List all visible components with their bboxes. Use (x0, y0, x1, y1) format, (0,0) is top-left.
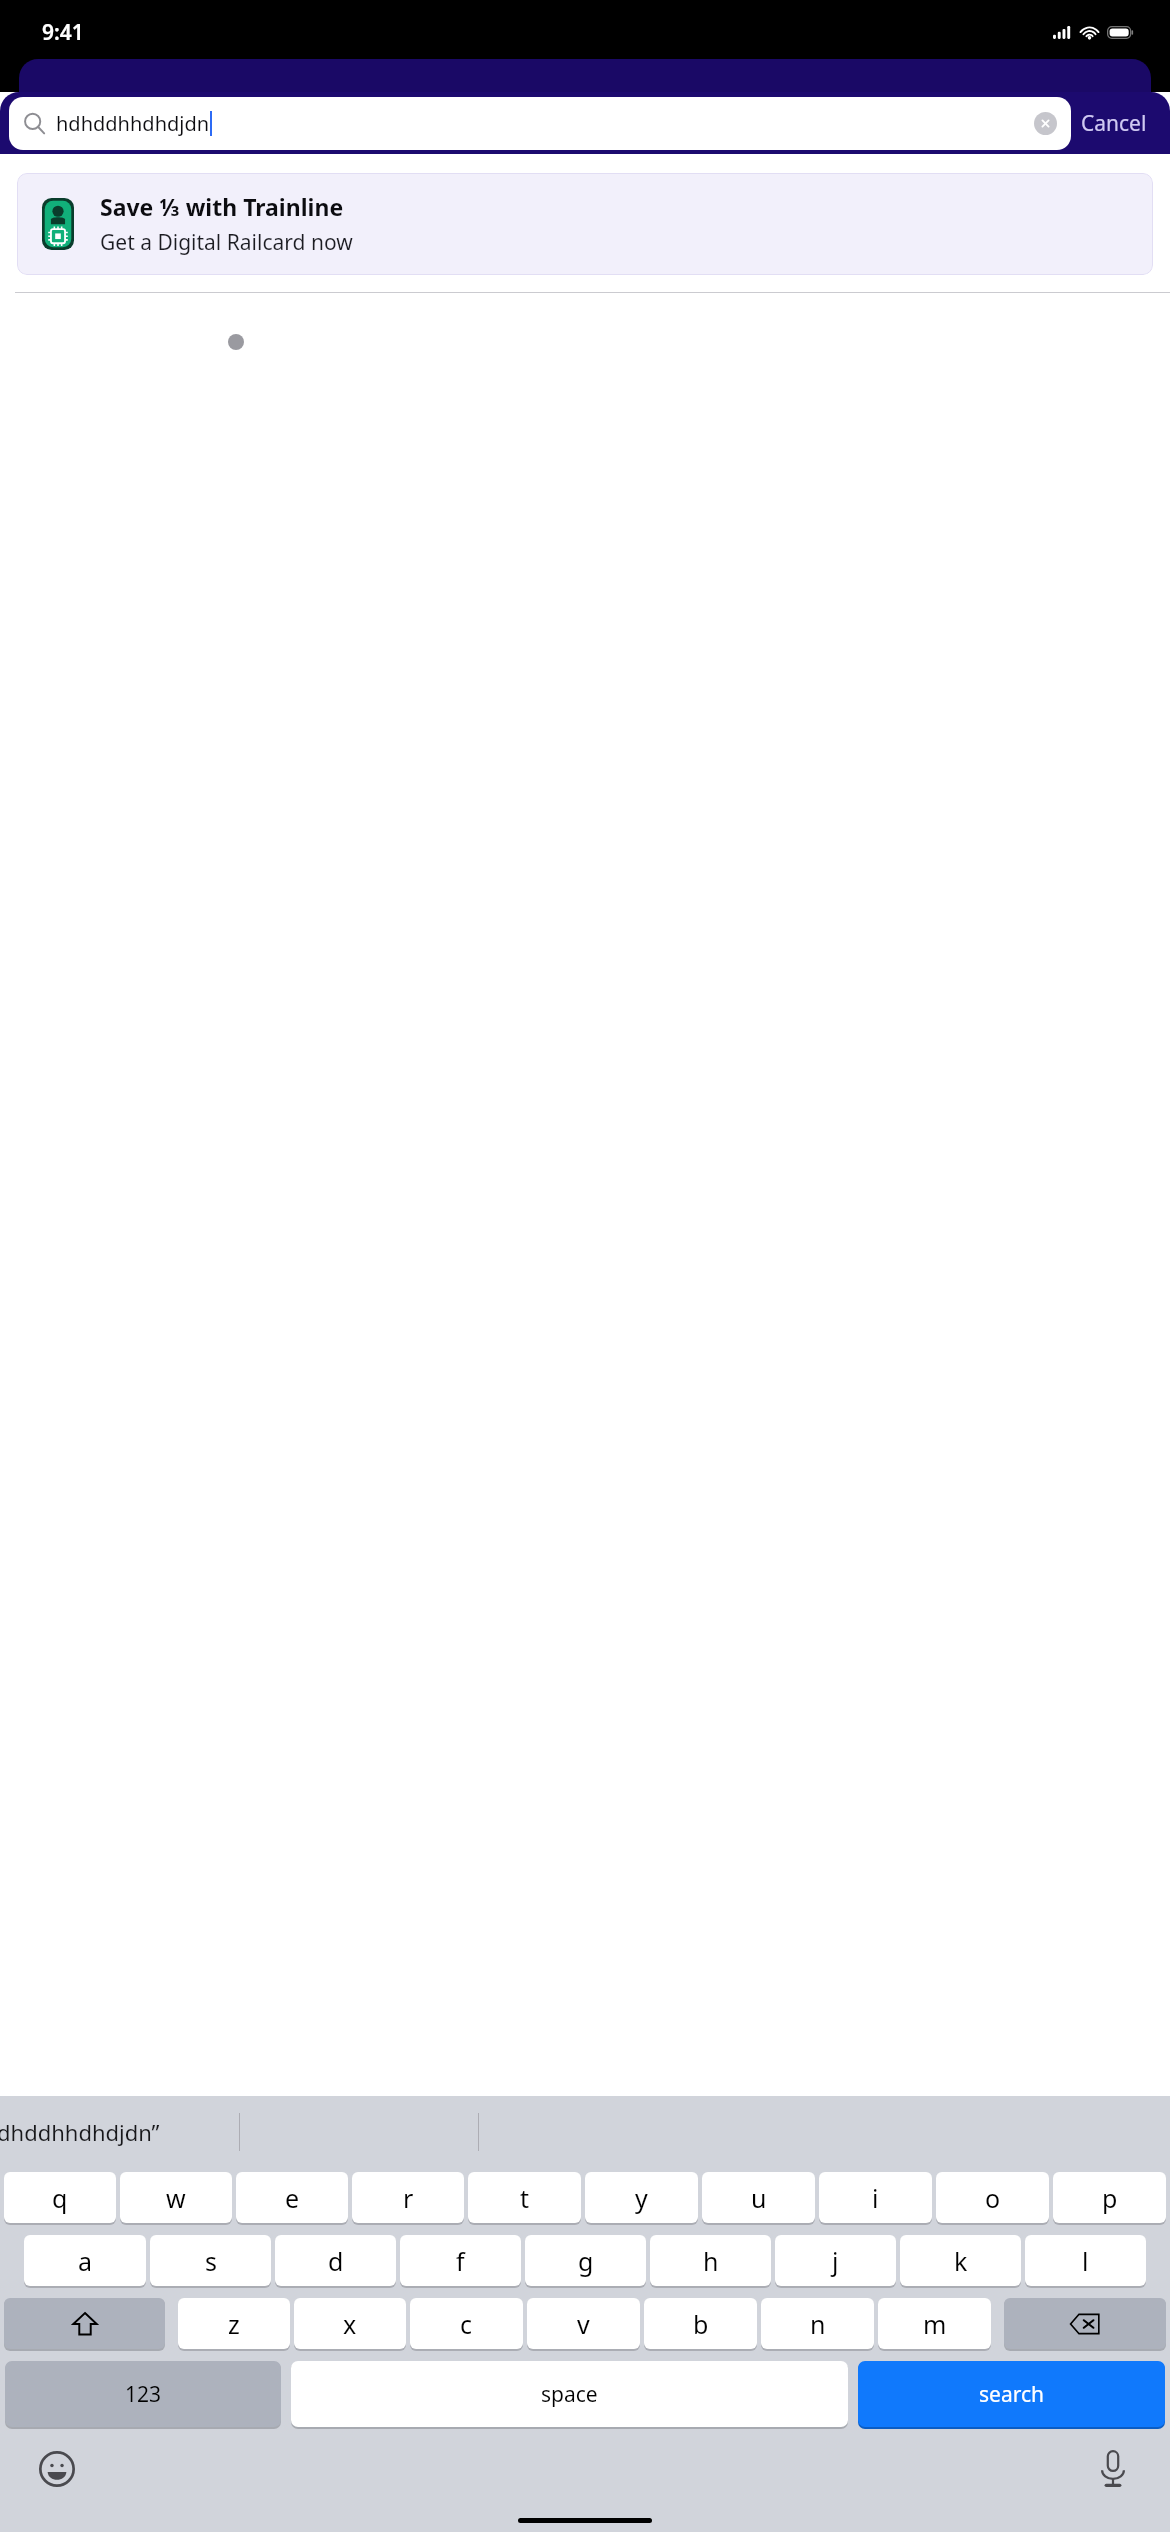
button[interactable]: y (585, 2172, 698, 2223)
button[interactable]: h (650, 2235, 771, 2286)
button[interactable]: o (936, 2172, 1049, 2223)
staticText: Save ⅓ with Trainline (100, 191, 344, 222)
staticText: Cancel (1081, 109, 1147, 138)
staticText: r (403, 2181, 414, 2215)
staticText: w (166, 2181, 186, 2215)
button[interactable]: m (878, 2298, 991, 2349)
button[interactable]: Clear text (1034, 112, 1057, 135)
button[interactable]: Backspace (1004, 2298, 1166, 2349)
staticText: a (78, 2244, 93, 2278)
staticText: o (985, 2181, 1001, 2215)
staticText: j (832, 2244, 839, 2278)
button[interactable]: a (24, 2235, 146, 2286)
staticText: z (228, 2307, 240, 2341)
staticText: g (578, 2244, 594, 2278)
button[interactable]: j (775, 2235, 896, 2286)
button[interactable]: search (858, 2361, 1165, 2427)
staticText: p (1102, 2181, 1118, 2215)
staticText: b (693, 2307, 709, 2341)
button[interactable]: f (400, 2235, 521, 2286)
button[interactable]: q (4, 2172, 116, 2223)
button[interactable]: k (900, 2235, 1021, 2286)
staticText: n (810, 2307, 826, 2341)
button[interactable]: t (468, 2172, 581, 2223)
button[interactable]: r (352, 2172, 464, 2223)
staticText: hdhddhhdhdjdn (56, 110, 210, 137)
button[interactable]: p (1053, 2172, 1166, 2223)
staticText: search (979, 2380, 1044, 2409)
button[interactable]: w (120, 2172, 232, 2223)
button[interactable]: g (525, 2235, 646, 2286)
staticText: 9:41 (42, 18, 84, 47)
button[interactable]: u (702, 2172, 815, 2223)
button[interactable] (4, 2298, 165, 2349)
staticText: u (751, 2181, 767, 2215)
staticText: q (52, 2181, 68, 2215)
button[interactable]: hdhddhhdhdjdn (9, 97, 1071, 150)
button[interactable]: x (294, 2298, 406, 2349)
button[interactable]: c (410, 2298, 523, 2349)
staticText: Get a Digital Railcard now (100, 228, 353, 257)
staticText: t (520, 2181, 530, 2215)
staticText: k (954, 2244, 968, 2278)
button[interactable]: Save ⅓ with Trainline (17, 173, 1153, 275)
staticText: y (635, 2181, 648, 2215)
staticText: x (343, 2307, 357, 2341)
staticText: dhddhhdhdjdn” (0, 2117, 160, 2147)
staticText: e (285, 2181, 300, 2215)
button[interactable]: Emoji keyboard (34, 2446, 80, 2492)
button[interactable]: i (819, 2172, 932, 2223)
staticText: i (872, 2181, 879, 2215)
button[interactable]: Cancel (1071, 101, 1157, 146)
button[interactable]: l (1025, 2235, 1146, 2286)
button[interactable]: 123 (5, 2361, 281, 2427)
staticText: c (460, 2307, 473, 2341)
staticText: f (456, 2244, 465, 2278)
staticText: l (1082, 2244, 1089, 2278)
staticText: s (205, 2244, 217, 2278)
button[interactable]: space (291, 2361, 848, 2427)
staticText: h (703, 2244, 719, 2278)
staticText: m (923, 2307, 947, 2341)
button[interactable]: v (527, 2298, 640, 2349)
button[interactable]: d (275, 2235, 396, 2286)
staticText: space (541, 2380, 598, 2409)
button[interactable]: Dictation (1090, 2446, 1136, 2492)
button[interactable]: s (150, 2235, 271, 2286)
staticText: 123 (125, 2380, 162, 2409)
staticText: v (577, 2307, 590, 2341)
button[interactable]: b (644, 2298, 757, 2349)
button[interactable]: e (236, 2172, 348, 2223)
staticText: d (328, 2244, 344, 2278)
button[interactable]: n (761, 2298, 874, 2349)
button[interactable]: z (178, 2298, 290, 2349)
